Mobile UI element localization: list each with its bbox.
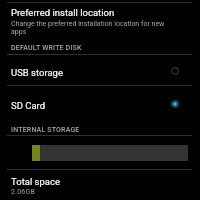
staticText: Change the preferred installation locati…	[11, 19, 169, 35]
other: Not selected	[168, 64, 182, 78]
staticText: DEFAULT WRITE DISK	[11, 43, 82, 51]
staticText: SD Card	[11, 100, 46, 111]
staticText: 2.06GB	[11, 187, 36, 195]
other: Internal storage usage	[32, 145, 188, 161]
button[interactable]: USB storage	[0, 55, 200, 85]
other: Selected	[168, 97, 182, 111]
staticText: Total space	[11, 176, 60, 187]
button[interactable]: Total space	[0, 170, 200, 200]
button[interactable]: SD Card	[0, 86, 200, 116]
button[interactable]: Preferred install location	[0, 3, 200, 41]
staticText: Preferred install location	[11, 7, 115, 18]
staticText: USB storage	[11, 67, 63, 78]
staticText: INTERNAL STORAGE	[11, 125, 80, 133]
